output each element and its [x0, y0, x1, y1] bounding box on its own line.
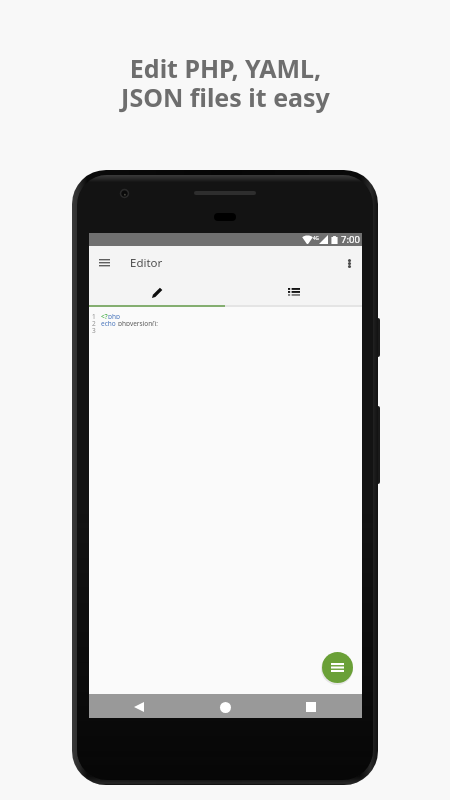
- staticText: Editor: [130, 255, 163, 271]
- button[interactable]: Open navigation drawer: [93, 250, 116, 276]
- staticText: phpversion();: [118, 319, 158, 326]
- button[interactable]: Menu: [322, 652, 353, 683]
- staticText: 7:00: [341, 233, 360, 246]
- staticText: Edit PHP, YAML, JSON files it easy: [121, 51, 330, 114]
- staticText: php: [108, 312, 121, 319]
- staticText: echo: [101, 319, 118, 326]
- button[interactable]: Editor tab: [89, 279, 225, 305]
- button[interactable]: Recent apps: [300, 696, 322, 718]
- button[interactable]: Back: [128, 696, 150, 718]
- staticText: 4G: [313, 235, 319, 241]
- staticText: 2: [92, 319, 96, 326]
- button[interactable]: Files tab: [225, 279, 362, 305]
- staticText: 3: [92, 326, 96, 333]
- staticText: <?: [101, 312, 108, 319]
- staticText: 1: [92, 312, 96, 319]
- button[interactable]: Home: [214, 696, 236, 718]
- button[interactable]: More options: [337, 250, 362, 276]
